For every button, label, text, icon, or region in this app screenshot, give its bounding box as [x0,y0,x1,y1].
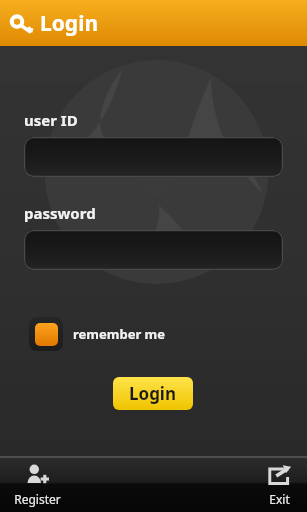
staticText: password [24,203,96,223]
button[interactable] [24,230,283,270]
button[interactable]: Register [4,459,71,510]
button[interactable]: Exit [256,459,303,510]
other: Exit [266,462,293,489]
staticText: remember me [73,325,166,343]
button[interactable]: Login [113,377,193,410]
staticText: Register [14,491,61,507]
staticText: user ID [24,110,78,130]
staticText: Login [129,382,177,405]
staticText: Exit [269,491,290,507]
button[interactable]: remember me [27,315,168,353]
staticText: Login [40,9,99,38]
button[interactable] [24,137,283,177]
